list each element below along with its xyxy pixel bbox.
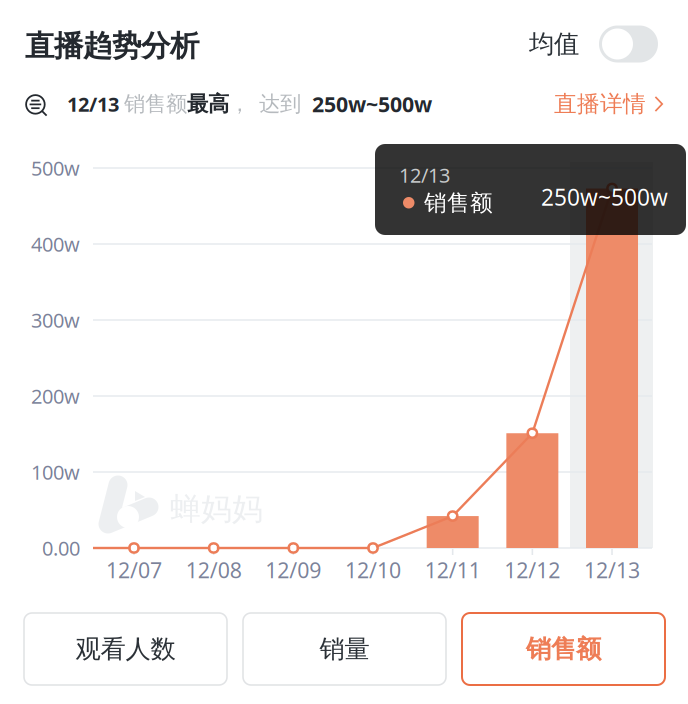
button[interactable]: 销量 — [243, 613, 446, 685]
staticText: 250w~500w — [312, 90, 432, 118]
staticText: 500w — [31, 155, 80, 181]
staticText: 12/09 — [265, 556, 321, 584]
staticText: 400w — [31, 231, 80, 257]
staticText: 销售额 — [526, 633, 601, 664]
button[interactable]: 直播详情 — [549, 92, 664, 116]
staticText: 达到 — [259, 91, 301, 117]
staticText: 12/10 — [345, 556, 401, 584]
staticText: 300w — [31, 307, 80, 333]
staticText: 均值 — [529, 28, 579, 59]
staticText: 直播趋势分析 — [25, 28, 199, 64]
staticText: 销售额 — [424, 189, 493, 217]
staticText: 销量 — [319, 633, 369, 664]
button[interactable]: 观看人数 — [24, 613, 227, 685]
staticText: 250w~500w — [541, 182, 668, 212]
staticText: ， — [229, 91, 250, 117]
staticText: 12/11 — [425, 556, 481, 584]
staticText: 直播详情 — [554, 90, 646, 118]
staticText: 0.00 — [42, 535, 80, 561]
staticText: 销售额 — [124, 91, 187, 117]
staticText: 12/07 — [106, 556, 162, 584]
staticText: 12/13 — [584, 556, 640, 584]
button[interactable]: 均值 — [528, 25, 658, 63]
staticText: 最高 — [187, 91, 229, 117]
staticText: 12/12 — [504, 556, 560, 584]
staticText: 观看人数 — [75, 633, 175, 664]
button[interactable]: 销售额 — [462, 613, 665, 685]
staticText: 蝉妈妈 — [170, 490, 263, 528]
staticText: 12/13 — [399, 162, 450, 188]
staticText: 12/13 — [67, 91, 119, 117]
staticText: 200w — [31, 383, 80, 409]
staticText: 100w — [31, 459, 80, 485]
staticText: 12/08 — [186, 556, 242, 584]
